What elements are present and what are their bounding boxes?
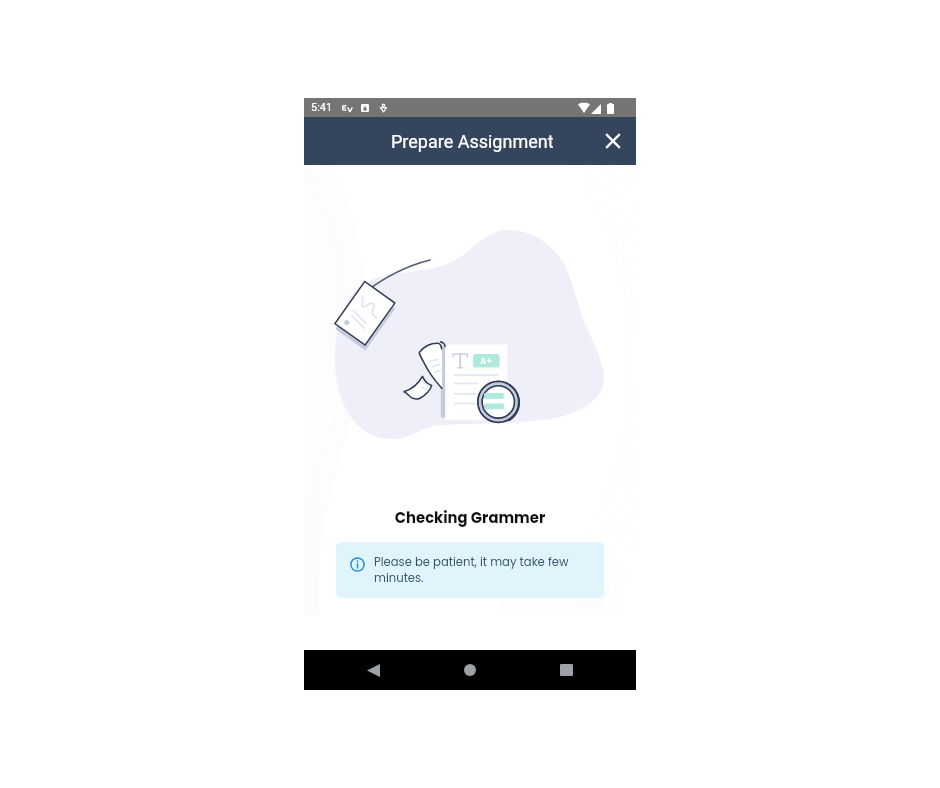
- staticText: Checking Grammer: [304, 507, 636, 528]
- staticText: Please be patient, it may take few minut…: [374, 554, 592, 586]
- button[interactable]: Recents: [544, 650, 588, 690]
- button[interactable]: Home: [448, 650, 492, 690]
- staticText: 5:41: [311, 101, 333, 114]
- button[interactable]: Close: [596, 124, 630, 158]
- staticText: Prepare Assignment: [391, 131, 554, 152]
- button[interactable]: Please be patient, it may take few minut…: [336, 542, 604, 598]
- button[interactable]: Back: [351, 650, 395, 690]
